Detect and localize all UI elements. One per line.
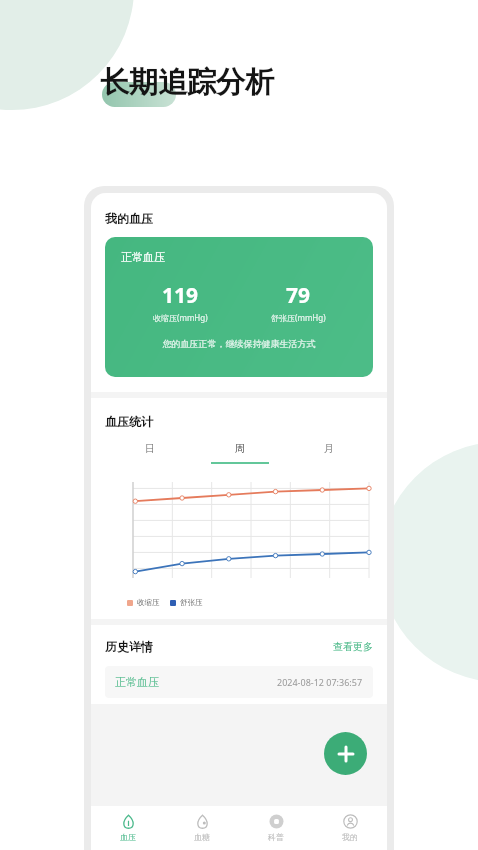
button[interactable]: 正常血压: [105, 237, 373, 377]
button[interactable]: 查看更多: [333, 640, 373, 653]
staticText: 我的血压: [105, 211, 153, 226]
staticText: 2024-08-12 07:36:57: [277, 676, 363, 688]
staticText: 科普: [268, 832, 284, 842]
staticText: 月: [324, 442, 334, 455]
staticText: 119: [162, 281, 199, 310]
staticText: 我的: [342, 832, 358, 842]
staticText: 血压: [120, 832, 136, 842]
button[interactable]: 血压: [91, 806, 165, 850]
staticText: 血糖: [194, 832, 210, 842]
staticText: 血压统计: [105, 414, 153, 429]
button[interactable]: 周: [195, 442, 284, 464]
staticText: 历史详情: [105, 639, 153, 654]
staticText: 收缩压(mmHg): [153, 312, 208, 323]
button[interactable]: 月: [284, 442, 373, 464]
staticText: 您的血压正常，继续保持健康生活方式: [121, 338, 357, 349]
button[interactable]: 添加血压记录: [324, 732, 367, 775]
staticText: 长期追踪分析: [100, 64, 274, 101]
staticText: 查看更多: [333, 640, 373, 653]
staticText: 舒张压: [180, 598, 203, 607]
button[interactable]: 我的: [313, 806, 387, 850]
staticText: 收缩压: [137, 598, 160, 607]
staticText: 舒张压(mmHg): [271, 312, 326, 323]
staticText: 周: [235, 442, 245, 455]
staticText: 正常血压: [115, 675, 159, 689]
button[interactable]: 血糖: [165, 806, 239, 850]
button[interactable]: 日: [105, 442, 195, 464]
button[interactable]: 正常血压: [105, 666, 373, 698]
staticText: 日: [145, 442, 155, 455]
staticText: 79: [286, 281, 311, 310]
button[interactable]: 科普: [239, 806, 313, 850]
staticText: 正常血压: [121, 250, 165, 264]
